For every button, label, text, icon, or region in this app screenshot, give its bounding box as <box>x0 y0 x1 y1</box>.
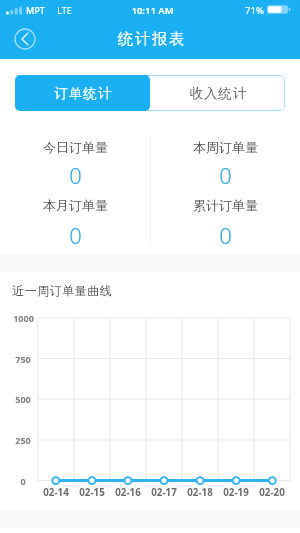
staticText: 10:11 AM <box>131 4 174 17</box>
staticText: MPT <box>26 4 45 16</box>
button[interactable]: 收入统计 <box>150 75 285 111</box>
staticText: 0 <box>20 475 26 487</box>
staticText: 1000 <box>13 312 34 324</box>
staticText: LTE <box>57 4 72 16</box>
staticText: 02-15 <box>79 486 105 499</box>
staticText: 收入统计 <box>189 85 247 102</box>
staticText: 02-20 <box>259 486 285 499</box>
staticText: 近一周订单量曲线 <box>12 283 112 298</box>
staticText: 02-19 <box>223 486 249 499</box>
staticText: 0 <box>69 160 82 188</box>
staticText: 250 <box>15 434 31 446</box>
staticText: 统计报表 <box>117 29 185 49</box>
staticText: 0 <box>69 220 82 248</box>
staticText: 今日订单量 <box>43 139 108 155</box>
staticText: 02-14 <box>43 486 69 499</box>
staticText: 订单统计 <box>54 85 112 102</box>
staticText: 累计订单量 <box>193 197 258 213</box>
staticText: 500 <box>15 393 31 405</box>
staticText: 0 <box>219 160 232 188</box>
staticText: 本月订单量 <box>43 197 108 213</box>
button[interactable]: 订单统计 <box>15 75 150 111</box>
staticText: 02-16 <box>115 486 141 499</box>
staticText: 750 <box>15 353 31 365</box>
staticText: 02-18 <box>187 486 213 499</box>
staticText: 0 <box>219 220 232 248</box>
staticText: 02-17 <box>151 486 177 499</box>
button[interactable] <box>13 27 37 51</box>
staticText: 71% <box>245 4 264 17</box>
staticText: 本周订单量 <box>193 139 258 155</box>
